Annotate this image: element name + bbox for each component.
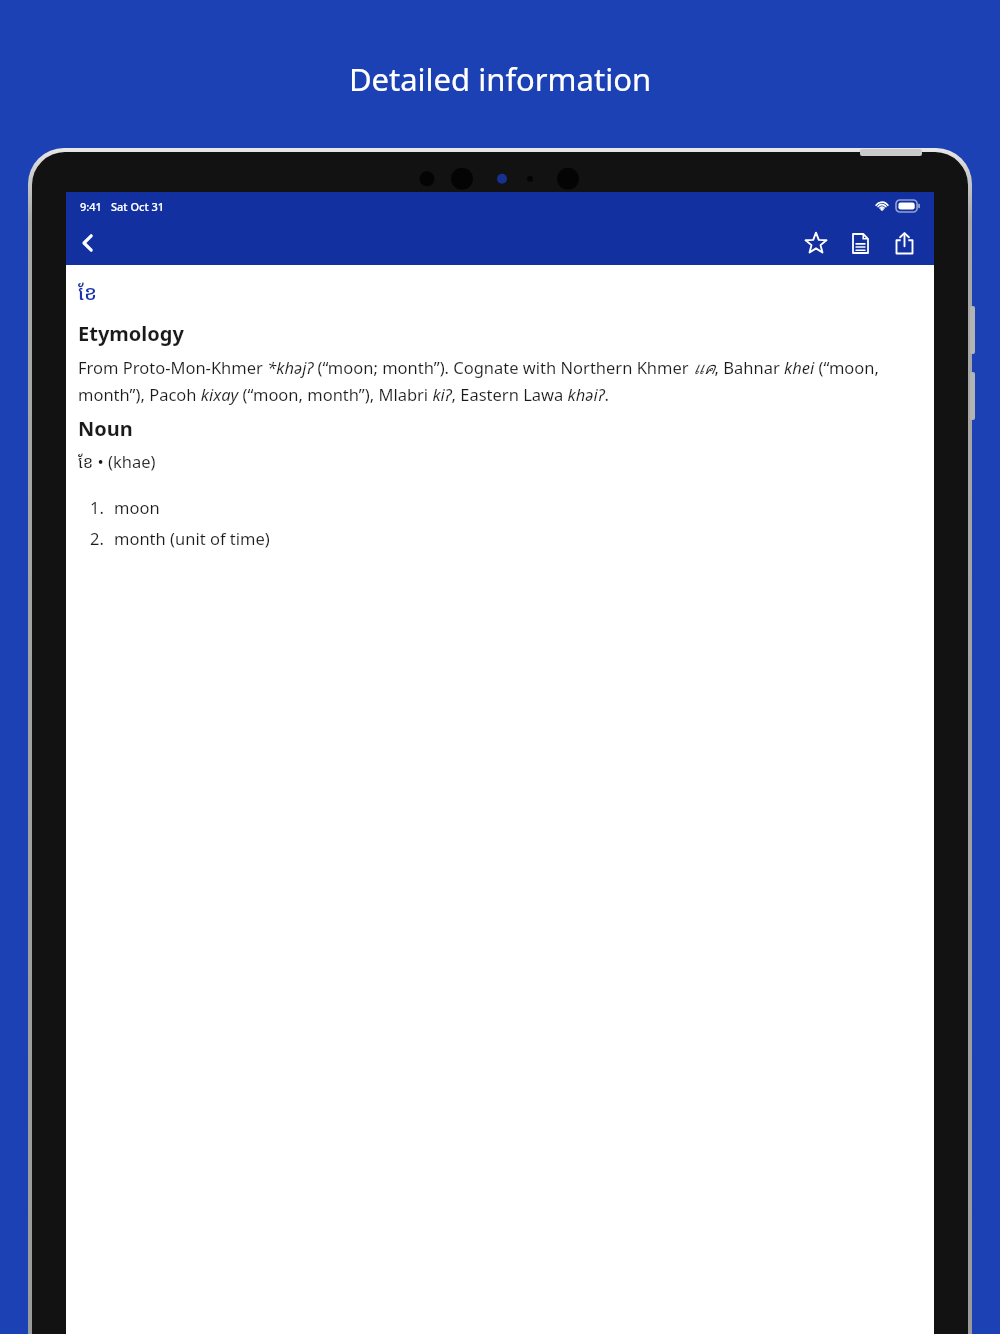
staticText: Detailed information xyxy=(0,58,1000,100)
staticText: 1. xyxy=(90,496,114,518)
staticText: Noun xyxy=(78,415,133,442)
button[interactable]: Favourite xyxy=(794,221,838,265)
staticText: Sat Oct 31 xyxy=(111,199,165,214)
staticText: month (unit of time) xyxy=(114,527,270,549)
staticText: ខែ xyxy=(78,279,97,306)
staticText: 2. xyxy=(90,527,114,549)
staticText: 9:41 xyxy=(80,199,102,214)
button[interactable]: Back xyxy=(66,221,110,265)
button[interactable]: Document xyxy=(838,221,882,265)
staticText: Etymology xyxy=(78,320,184,347)
staticText: From Proto-Mon-Khmer *khəjʔ (“moon; mont… xyxy=(78,355,922,405)
button[interactable]: Share xyxy=(882,221,926,265)
staticText: moon xyxy=(114,496,160,518)
staticText: ខែ • (khae) xyxy=(78,450,156,472)
